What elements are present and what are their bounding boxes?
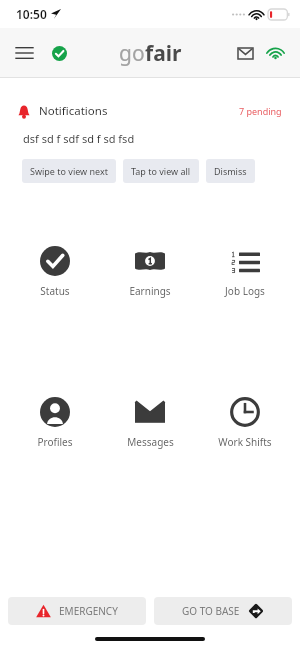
staticText: fair	[145, 39, 182, 68]
button[interactable]: Connection	[260, 38, 290, 68]
button[interactable]: Dismiss	[206, 159, 255, 183]
staticText: Profiles	[37, 435, 73, 449]
staticText: Job Logs	[225, 284, 265, 298]
staticText: 7 pending	[239, 105, 282, 117]
button[interactable]: GO TO BASE	[154, 597, 292, 625]
staticText: EMERGENCY	[59, 604, 118, 618]
staticText: Status	[40, 284, 70, 298]
staticText: GO TO BASE	[182, 604, 240, 618]
button[interactable]: EMERGENCY	[8, 597, 146, 625]
button[interactable]: Online status	[45, 39, 73, 67]
staticText: dsf sd f sdf sd f sd fsd	[23, 131, 135, 146]
button[interactable]: Earnings	[104, 244, 196, 300]
staticText: Tap to view all	[131, 165, 191, 177]
staticText: Earnings	[129, 284, 171, 298]
staticText: Work Shifts	[218, 435, 272, 449]
staticText: Messages	[127, 435, 174, 449]
button[interactable]: Work Shifts	[199, 395, 291, 451]
button[interactable]: Job Logs	[199, 244, 291, 300]
staticText: Swipe to view next	[30, 165, 108, 177]
button[interactable]: Menu	[8, 37, 40, 69]
button[interactable]: Messages	[104, 395, 196, 451]
button[interactable]: Status	[9, 244, 101, 300]
staticText: Notifications	[39, 103, 108, 119]
button[interactable]: Tap to view all	[123, 159, 199, 183]
button[interactable]: Swipe to view next	[22, 159, 116, 183]
staticText: Dismiss	[214, 165, 247, 177]
button[interactable]: Profiles	[9, 395, 101, 451]
button[interactable]: Messages	[230, 38, 260, 68]
staticText: 10:50	[16, 6, 47, 22]
button[interactable]: Notifications	[8, 92, 292, 194]
staticText: go	[119, 39, 145, 68]
